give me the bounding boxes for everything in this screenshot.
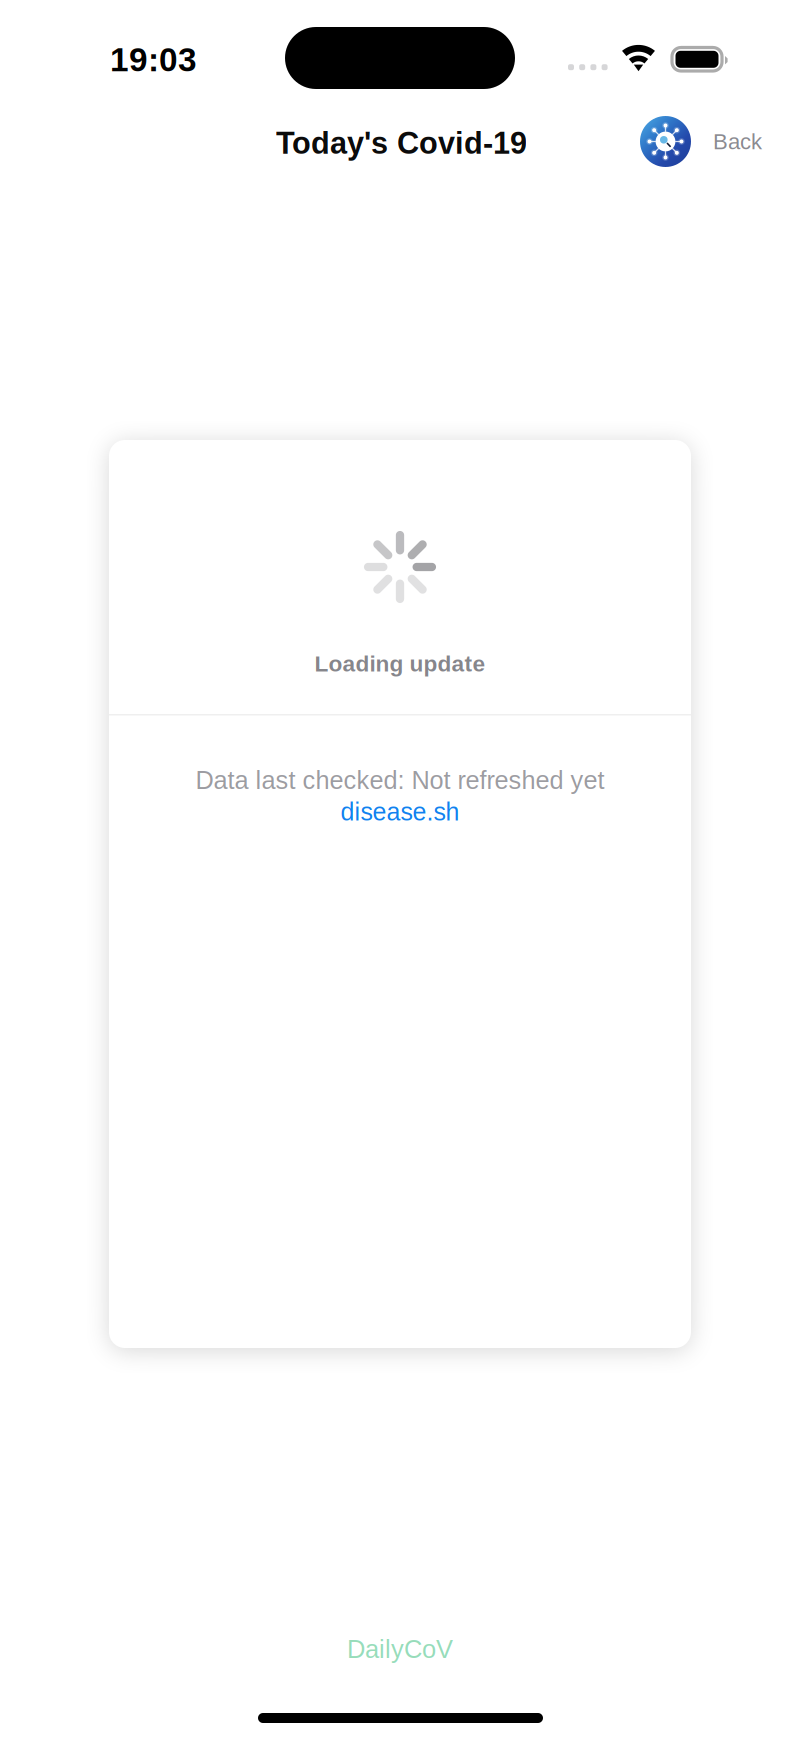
button[interactable]: disease.sh [340,798,459,826]
staticText: Back [713,129,762,154]
staticText: 19:03 [110,41,197,78]
staticText: DailyCoV [347,1635,453,1663]
staticText: Loading update [314,651,485,676]
staticText: disease.sh [340,798,459,826]
staticText: Data last checked: Not refreshed yet [195,766,604,794]
button[interactable]: Back to DailyCoV [640,108,762,175]
staticText: Today's Covid-19 [276,126,527,160]
